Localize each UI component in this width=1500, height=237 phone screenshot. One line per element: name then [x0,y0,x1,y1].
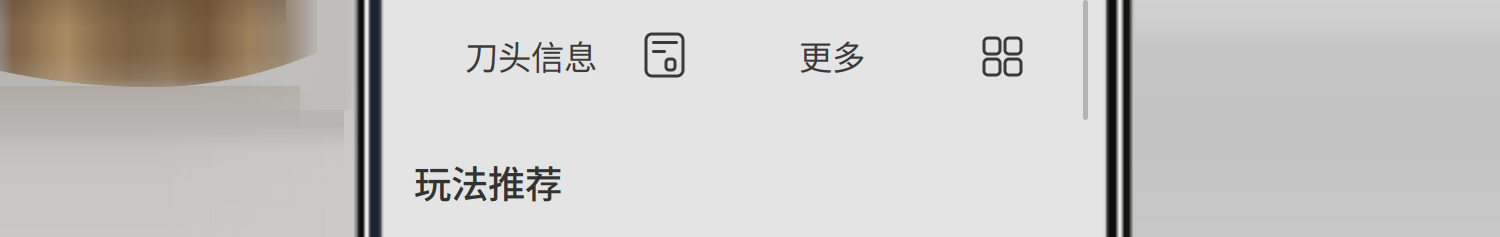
staticText: 玩法推荐 [414,155,562,209]
staticText: 刀头信息 [465,31,597,79]
button[interactable]: 刀头信息 [646,34,683,76]
button[interactable]: 更多 [799,31,865,79]
button[interactable]: 刀头信息 [465,31,597,79]
button[interactable]: 更多 [984,38,1021,75]
staticText: 更多 [799,31,865,79]
